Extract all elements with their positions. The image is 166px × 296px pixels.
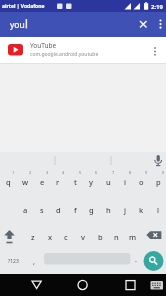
button[interactable]: b xyxy=(92,227,108,247)
staticText: w xyxy=(22,177,29,187)
staticText: 0 xyxy=(162,170,165,175)
staticText: r xyxy=(56,177,60,187)
button[interactable]: t xyxy=(67,172,83,192)
staticText: c xyxy=(64,232,68,242)
staticText: s xyxy=(40,205,44,215)
staticText: v xyxy=(81,232,85,242)
staticText: 7 xyxy=(112,170,115,175)
staticText: 1 xyxy=(12,170,15,175)
button[interactable]: k xyxy=(133,200,149,220)
button[interactable]: m xyxy=(125,227,141,247)
button[interactable]: g xyxy=(83,200,99,220)
staticText: 5 xyxy=(79,170,82,175)
button[interactable]: w xyxy=(17,172,33,192)
button[interactable]: x xyxy=(42,227,58,247)
staticText: q xyxy=(6,177,11,187)
button[interactable]: o xyxy=(133,172,149,192)
button[interactable]: y xyxy=(83,172,99,192)
button[interactable]: i xyxy=(117,172,133,192)
button[interactable]: q xyxy=(0,172,16,192)
button[interactable]: n xyxy=(108,227,124,247)
staticText: l xyxy=(157,205,160,215)
staticText: g xyxy=(89,205,94,215)
button[interactable]: l xyxy=(150,200,166,220)
button[interactable]: z xyxy=(25,227,41,247)
button[interactable]: a xyxy=(17,200,33,220)
staticText: n xyxy=(114,232,119,242)
button[interactable]: r xyxy=(50,172,66,192)
button[interactable]: u xyxy=(100,172,116,192)
staticText: f xyxy=(74,205,77,215)
staticText: 4 xyxy=(62,170,65,175)
button[interactable]: ?123 xyxy=(2,254,24,268)
staticText: e xyxy=(40,177,45,187)
button[interactable]: YouTube xyxy=(0,37,166,63)
staticText: airtel | Vodafone xyxy=(2,3,45,10)
button[interactable]: v xyxy=(75,227,91,247)
staticText: 3 xyxy=(46,170,49,175)
staticText: y xyxy=(89,177,93,187)
staticText: j xyxy=(124,205,127,215)
staticText: x xyxy=(48,232,53,242)
button[interactable]: h xyxy=(100,200,116,220)
button[interactable]: . xyxy=(128,250,144,270)
button[interactable] xyxy=(56,274,111,296)
button[interactable]: e xyxy=(34,172,50,192)
staticText: d xyxy=(56,205,61,215)
button[interactable]: you xyxy=(0,12,166,37)
button[interactable]: f xyxy=(67,200,83,220)
staticText: p xyxy=(156,177,161,187)
staticText: i xyxy=(124,177,127,187)
button[interactable]: s xyxy=(34,200,50,220)
staticText: 2 xyxy=(29,170,32,175)
staticText: a xyxy=(23,205,28,215)
button[interactable] xyxy=(0,274,56,296)
staticText: 8 xyxy=(129,170,132,175)
staticText: o xyxy=(139,177,144,187)
button[interactable]: c xyxy=(58,227,74,247)
button[interactable] xyxy=(111,274,166,296)
staticText: 6 xyxy=(95,170,98,175)
staticText: t xyxy=(74,177,77,187)
staticText: z xyxy=(31,232,35,242)
button[interactable] xyxy=(44,253,131,265)
staticText: com.google.android.youtube xyxy=(30,51,99,58)
button[interactable]: d xyxy=(50,200,66,220)
staticText: h xyxy=(106,205,111,215)
staticText: , xyxy=(33,257,35,267)
staticText: YouTube xyxy=(30,41,57,50)
staticText: you xyxy=(10,19,25,31)
staticText: u xyxy=(106,177,111,187)
button[interactable]: , xyxy=(26,252,42,272)
staticText: m xyxy=(129,232,137,242)
button[interactable]: j xyxy=(117,200,133,220)
staticText: b xyxy=(98,232,103,242)
staticText: 2:19 xyxy=(151,3,163,11)
button[interactable]: p xyxy=(150,172,166,192)
staticText: 9 xyxy=(145,170,148,175)
staticText: ?123 xyxy=(8,258,19,265)
staticText: k xyxy=(139,205,144,215)
staticText: . xyxy=(135,255,137,265)
button[interactable] xyxy=(143,251,164,271)
